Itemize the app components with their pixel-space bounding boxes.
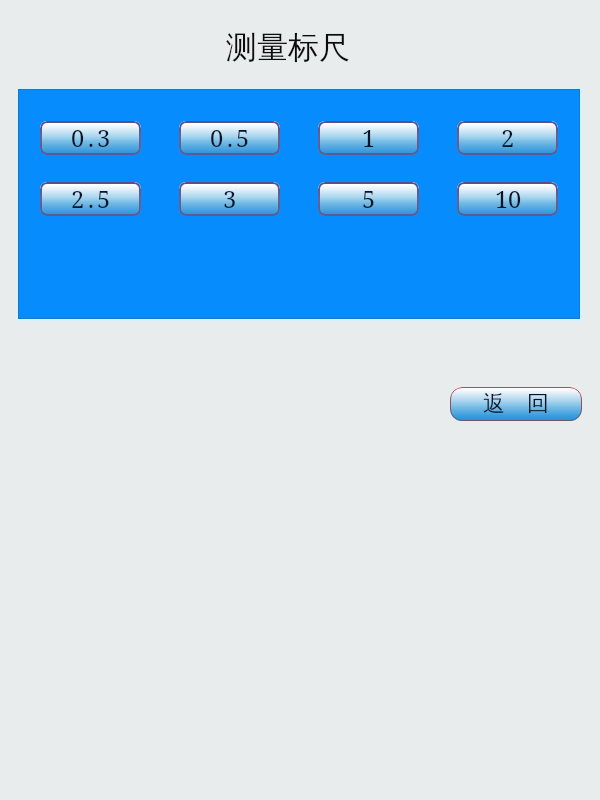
button[interactable]: 5 (318, 182, 419, 216)
staticText: 3 (223, 183, 236, 215)
staticText: 3 (97, 122, 110, 154)
staticText: 1 (495, 183, 508, 215)
staticText: 回 (527, 390, 549, 418)
staticText: 5 (97, 183, 110, 215)
staticText: 0 (71, 122, 84, 154)
button[interactable]: 返 (450, 387, 582, 421)
staticText: . (88, 122, 94, 154)
button[interactable]: 2 (457, 121, 558, 155)
staticText: . (88, 183, 94, 215)
staticText: 0 (210, 122, 223, 154)
button[interactable]: 1 (318, 121, 419, 155)
staticText: 2 (71, 183, 84, 215)
staticText: 1 (362, 122, 375, 154)
staticText: . (227, 122, 233, 154)
button[interactable]: 0 (179, 121, 280, 155)
staticText: 5 (362, 183, 375, 215)
button[interactable]: 0 (40, 121, 141, 155)
staticText: 2 (501, 122, 514, 154)
staticText: 返 (483, 390, 505, 418)
staticText: 测量标尺 (226, 28, 350, 67)
button[interactable]: 2 (40, 182, 141, 216)
button[interactable]: 1 (457, 182, 558, 216)
button[interactable]: 3 (179, 182, 280, 216)
staticText: 0 (508, 183, 521, 215)
staticText: 5 (236, 122, 249, 154)
